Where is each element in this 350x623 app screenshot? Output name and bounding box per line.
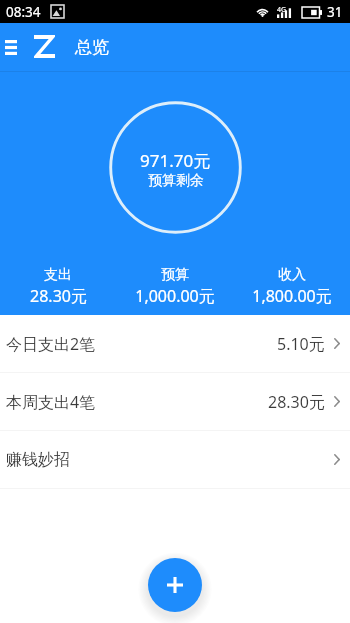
staticText: 28.30元	[268, 391, 325, 413]
staticText: 支出	[44, 266, 72, 284]
staticText: 1,800.00元	[252, 285, 332, 307]
button[interactable]: Add	[148, 558, 202, 612]
staticText: 5.10元	[277, 333, 325, 355]
staticText: 4G	[277, 5, 287, 15]
staticText: 今日支出2笔	[6, 333, 96, 355]
staticText: 08:34	[6, 3, 41, 21]
staticText: 收入	[278, 266, 306, 284]
staticText: 总览	[75, 37, 109, 58]
button[interactable]: 赚钱妙招	[0, 431, 350, 488]
staticText: 1,000.00元	[135, 285, 215, 307]
staticText: 本周支出4笔	[6, 391, 96, 413]
button[interactable]: 今日支出2笔	[0, 315, 350, 372]
button[interactable]: Menu	[0, 23, 22, 72]
button[interactable]: 本周支出4笔	[0, 373, 350, 430]
staticText: 预算	[161, 266, 189, 284]
staticText: 28.30元	[30, 285, 87, 307]
staticText: 31	[327, 3, 343, 21]
staticText: 971.70元	[140, 149, 211, 172]
staticText: 预算剩余	[148, 172, 204, 190]
staticText: 赚钱妙招	[6, 450, 70, 470]
